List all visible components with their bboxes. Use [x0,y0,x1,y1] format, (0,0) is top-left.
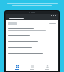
button[interactable] [6,46,58,49]
button[interactable] [6,40,58,43]
button[interactable]: Dashboard [13,64,21,71]
button[interactable] [6,34,58,37]
button[interactable] [6,52,58,55]
button[interactable]: List [28,64,36,71]
button[interactable] [6,27,58,32]
button[interactable]: Profile [43,64,51,71]
button[interactable] [6,20,58,27]
